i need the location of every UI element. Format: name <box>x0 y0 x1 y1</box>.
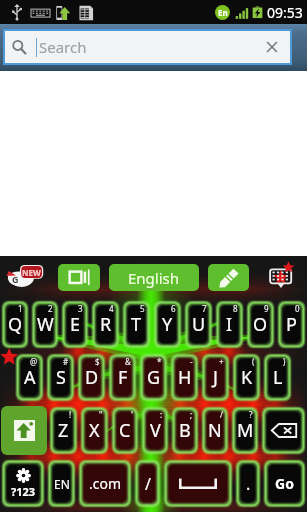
button[interactable]: L <box>263 353 292 402</box>
staticText: P <box>286 312 297 337</box>
button[interactable]: What's new <box>4 262 44 292</box>
button[interactable]: EN <box>47 459 76 508</box>
button[interactable]: Shift <box>1 406 47 455</box>
staticText: NEW <box>22 267 41 278</box>
staticText: Go <box>275 474 294 493</box>
button[interactable]: S <box>46 353 75 402</box>
button[interactable]: X <box>80 406 109 455</box>
staticText: @ <box>30 356 38 367</box>
button[interactable]: / <box>134 459 161 508</box>
staticText: 2 <box>48 303 53 314</box>
staticText: R <box>100 312 112 337</box>
staticText: 0 <box>295 303 300 314</box>
staticText: . <box>246 473 251 495</box>
staticText: English <box>128 268 180 288</box>
button[interactable]: W <box>31 300 59 349</box>
staticText: * <box>157 356 162 367</box>
button[interactable]: D <box>77 353 106 402</box>
button[interactable]: B <box>171 406 199 455</box>
button[interactable]: Y <box>153 300 182 349</box>
staticText: ' <box>131 409 133 420</box>
button[interactable]: Go <box>263 459 306 508</box>
staticText: B <box>179 418 191 443</box>
button[interactable]: Search <box>5 31 290 63</box>
staticText: L <box>273 365 283 390</box>
button[interactable]: English <box>109 264 199 291</box>
staticText: ( <box>252 356 255 367</box>
button[interactable]: Keyboard layout <box>58 264 100 291</box>
staticText: EN <box>54 476 70 492</box>
staticText: ; <box>190 409 193 420</box>
button[interactable]: Q <box>1 300 29 349</box>
button[interactable]: T <box>122 300 151 349</box>
staticText: F <box>118 365 128 390</box>
staticText: ! <box>69 409 72 420</box>
staticText: .com <box>89 474 122 493</box>
staticText: 8 <box>233 303 238 314</box>
staticText: A <box>24 365 36 390</box>
staticText: Y <box>162 312 173 337</box>
staticText: 3 <box>78 303 83 314</box>
staticText: 1 <box>18 303 23 314</box>
button[interactable]: .com <box>78 459 132 508</box>
button[interactable]: H <box>170 353 199 402</box>
staticText: 5 <box>140 303 145 314</box>
staticText: U <box>192 312 206 337</box>
staticText: K <box>241 365 253 390</box>
staticText: H <box>178 365 192 390</box>
staticText: ? <box>249 409 253 420</box>
button[interactable]: C <box>111 406 139 455</box>
button[interactable]: Backspace <box>261 406 306 455</box>
staticText: O <box>253 312 268 337</box>
staticText: & <box>125 356 131 367</box>
button[interactable]: Symbols <box>1 459 45 508</box>
button[interactable]: A <box>15 353 44 402</box>
staticText: Search <box>39 37 87 57</box>
staticText: D <box>85 365 99 390</box>
button[interactable]: N <box>201 406 229 455</box>
staticText: 7 <box>202 303 207 314</box>
staticText: $ <box>95 356 100 367</box>
button[interactable]: E <box>61 300 89 349</box>
staticText: ?123 <box>11 484 36 499</box>
button[interactable]: Keyboard themes <box>264 261 298 293</box>
button[interactable]: I <box>215 300 244 349</box>
staticText: G <box>147 365 161 390</box>
button[interactable]: O <box>246 300 275 349</box>
button[interactable]: K <box>232 353 261 402</box>
staticText: + <box>219 356 224 367</box>
button[interactable]: V <box>141 406 169 455</box>
staticText: I <box>226 312 233 337</box>
button[interactable]: M <box>231 406 259 455</box>
staticText: N <box>208 418 222 443</box>
button[interactable]: Handwriting <box>208 264 249 291</box>
staticText: 6 <box>171 303 176 314</box>
staticText: : <box>160 409 163 420</box>
staticText: V <box>150 418 161 443</box>
staticText: Z <box>58 418 69 443</box>
staticText: En <box>218 7 228 18</box>
staticText: ) <box>283 356 286 367</box>
staticText: 9 <box>264 303 269 314</box>
button[interactable]: Z <box>49 406 78 455</box>
button[interactable]: . <box>235 459 261 508</box>
button[interactable]: R <box>91 300 120 349</box>
button[interactable]: F <box>108 353 137 402</box>
staticText: / <box>220 409 223 420</box>
staticText: W <box>37 312 54 337</box>
button[interactable]: P <box>277 300 306 349</box>
staticText: 4 <box>109 303 114 314</box>
button[interactable]: U <box>184 300 213 349</box>
staticText: E <box>70 312 81 337</box>
staticText: 09:53 <box>267 3 303 22</box>
button[interactable]: G <box>139 353 168 402</box>
staticText: # <box>63 356 69 367</box>
staticText: " <box>99 409 103 420</box>
staticText: C <box>119 418 131 443</box>
button[interactable]: J <box>201 353 230 402</box>
staticText: M <box>237 418 254 443</box>
staticText: X <box>89 418 100 443</box>
button[interactable]: Space <box>163 459 233 508</box>
staticText: G <box>12 273 19 285</box>
staticText: Q <box>8 312 23 337</box>
